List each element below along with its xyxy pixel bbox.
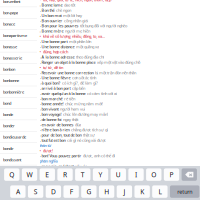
- staticText: cơn sốt ác tính: [72, 75, 96, 80]
- button[interactable]: L: [152, 185, 167, 198]
- staticText: xếp một vật vào đúng chỗ: [97, 59, 140, 65]
- staticText: - avoir quelqu'un à la bonne: [39, 91, 85, 96]
- staticText: một phần lớn: [69, 39, 91, 44]
- button[interactable]: O: [146, 168, 161, 181]
- staticText: theo đúng địa chỉ: [76, 54, 104, 60]
- staticText: return: [177, 188, 192, 195]
- staticText: •: [39, 148, 41, 153]
- button[interactable]: H: [99, 185, 114, 198]
- button[interactable]: bondir: [0, 143, 37, 154]
- button[interactable]: A: [10, 185, 25, 198]
- button[interactable]: return: [170, 185, 199, 198]
- staticText: L: [158, 187, 161, 196]
- button[interactable]: P: [164, 168, 179, 181]
- staticText: bond: [3, 100, 11, 106]
- button[interactable]: bonde: [0, 109, 37, 120]
- staticText: bonde: [3, 112, 13, 117]
- staticText: - n'être bon à rien: [39, 127, 69, 132]
- staticText: tốt, hay, giỏi, tử tế, hiền, ngon, thơm,…: [43, 0, 111, 2]
- staticText: - Une bonne part: [39, 39, 67, 44]
- staticText: một lời hay: [63, 13, 82, 18]
- staticText: bonace: [3, 21, 15, 27]
- staticText: - Bonne lame: [39, 2, 62, 8]
- staticText: bonder: [3, 123, 15, 128]
- staticText: P: [169, 170, 173, 179]
- button[interactable]: W: [22, 168, 37, 181]
- button[interactable]: bonapartisme: [0, 30, 37, 41]
- staticText: được, anh có thể đi: [83, 153, 115, 158]
- staticText: S: [34, 187, 38, 196]
- staticText: công nhân giỏi: [64, 18, 88, 23]
- staticText: - bon voyage!: [39, 111, 61, 117]
- staticText: - en avoir de bonnes: [39, 122, 73, 127]
- staticText: bonbonnière: [3, 89, 24, 94]
- button[interactable]: K: [134, 185, 150, 198]
- staticText: W: [26, 170, 32, 179]
- button[interactable]: R: [57, 168, 73, 181]
- button[interactable]: F: [63, 185, 79, 198]
- button[interactable]: bondissant: [0, 154, 37, 165]
- staticText: G: [86, 187, 91, 196]
- staticText: một quãng xa: [76, 44, 99, 49]
- button[interactable]: bonasse: [0, 41, 37, 52]
- staticText: •: [39, 33, 41, 39]
- button[interactable]: S: [28, 185, 43, 198]
- staticText: chúc lên đường may mắn!: [63, 111, 108, 117]
- button[interactable]: G: [81, 185, 96, 198]
- button[interactable]: Y: [93, 168, 108, 181]
- button[interactable]: bonbonne: [0, 75, 37, 86]
- button[interactable]: bonasserie: [0, 52, 37, 64]
- button[interactable]: bon-papa: [0, 7, 37, 18]
- staticText: - Bon ouvrier: [39, 18, 62, 23]
- staticText: bonapartisme: [3, 33, 27, 38]
- button[interactable]: U: [111, 168, 126, 181]
- button[interactable]: T: [75, 168, 90, 181]
- staticText: - Ranger un objet à la bonne place: [39, 59, 95, 65]
- button[interactable]: bon-enfant: [0, 0, 37, 7]
- button[interactable]: bonder: [0, 120, 37, 131]
- button[interactable]: bondieusarde: [0, 131, 37, 143]
- staticText: O: [151, 170, 156, 179]
- staticText: - bon! Vous pouvez partir: [39, 153, 81, 158]
- staticText: bonbonne: [3, 78, 19, 83]
- staticText: có ích gì?, để làm gì?: [62, 80, 98, 86]
- staticText: - Bon thé: [39, 7, 54, 13]
- staticText: thật sự: [83, 132, 95, 138]
- staticText: - bon marché: [39, 96, 62, 101]
- button[interactable]: bonbon: [0, 64, 37, 75]
- staticText: Q: [9, 170, 14, 179]
- staticText: dao tốt: [64, 2, 75, 8]
- staticText: - À la bonne adresse: [39, 54, 74, 60]
- button[interactable]: E: [40, 168, 55, 181]
- staticText: đúng, hợp cách: [43, 49, 68, 54]
- staticText: ngay thật: [63, 117, 78, 122]
- button[interactable]: bonace: [0, 18, 37, 30]
- staticText: chúc mừng năm mới!: [65, 101, 103, 106]
- staticText: J: [123, 187, 125, 196]
- staticText: - Bonne mère: [39, 28, 63, 34]
- button[interactable]: I: [128, 168, 144, 181]
- staticText: có cảm tình với ai: [87, 91, 117, 96]
- button[interactable]: bonbonnière: [0, 86, 37, 97]
- staticText: bondir: [3, 146, 14, 151]
- staticText: bon-enfant: [3, 0, 20, 4]
- button[interactable]: bond: [0, 97, 37, 109]
- staticText: I: [135, 170, 137, 179]
- staticText: bondissant: [3, 157, 21, 162]
- staticText: phản nghĩa: [39, 158, 57, 164]
- staticText: H: [104, 187, 109, 196]
- button[interactable]: Q: [4, 168, 19, 181]
- button[interactable]: D: [46, 185, 61, 198]
- staticText: chè ngon: [56, 7, 71, 13]
- staticText: tự tử, dễ tin: [43, 65, 63, 70]
- staticText: bonasserie: [3, 55, 22, 61]
- staticText: xấu, ác: [75, 163, 87, 169]
- staticText: cái gì nó cũng xài được: [67, 137, 106, 143]
- staticText: - Une bonne distance: [39, 44, 74, 49]
- staticText: •: [39, 49, 41, 54]
- staticText: bonbon: [3, 67, 15, 72]
- staticText: K: [140, 187, 144, 196]
- button[interactable]: Delete: [182, 168, 197, 181]
- button[interactable]: J: [117, 185, 132, 198]
- staticText: rẻ tiền: [64, 96, 75, 101]
